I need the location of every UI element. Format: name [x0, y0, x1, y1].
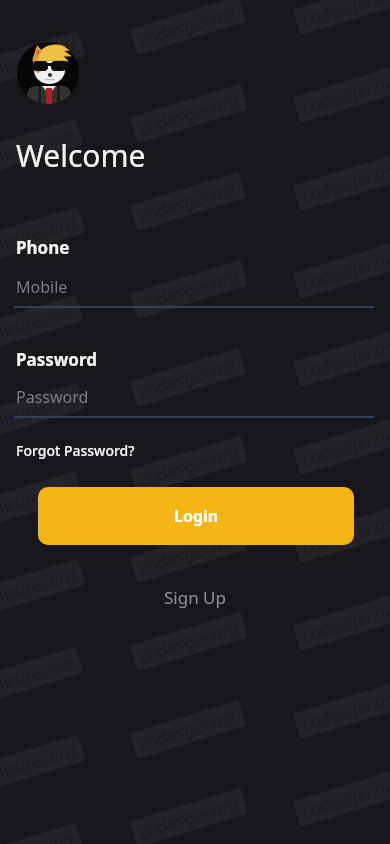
staticText: codesger.net — [299, 772, 390, 823]
staticText: Password — [16, 348, 97, 371]
staticText: codesger.net — [299, 596, 390, 647]
staticText: codesger.org — [0, 386, 79, 439]
button[interactable]: Mobile — [14, 268, 374, 308]
staticText: Phone — [16, 236, 70, 259]
staticText: codesger.org — [0, 210, 79, 263]
staticText: codesger.net — [136, 0, 240, 51]
staticText: codesger.org — [136, 87, 242, 140]
staticText: codesger.org — [136, 615, 242, 668]
button[interactable] — [17, 42, 79, 104]
staticText: codesger.net — [0, 475, 77, 526]
staticText: codesger.net — [299, 420, 390, 471]
staticText: Mobile — [16, 276, 68, 298]
staticText: codesger.org — [299, 683, 390, 736]
staticText: codesger.org — [0, 562, 79, 615]
staticText: codesger.org — [299, 155, 390, 208]
button[interactable]: Login — [38, 487, 354, 545]
button[interactable]: Sign Up — [164, 586, 226, 609]
button[interactable]: Password — [14, 378, 374, 418]
staticText: codesger.net — [0, 651, 77, 702]
staticText: codesger.org — [136, 439, 242, 492]
staticText: Login — [174, 505, 219, 527]
staticText: codesger.net — [136, 176, 240, 227]
staticText: codesger.net — [136, 528, 240, 579]
staticText: codesger.net — [136, 704, 240, 755]
staticText: codesger.net — [136, 352, 240, 403]
staticText: codesger.org — [299, 0, 390, 32]
staticText: codesger.net — [299, 244, 390, 295]
staticText: codesger.org — [0, 738, 79, 791]
staticText: codesger.net — [299, 68, 390, 119]
staticText: codesger.net — [0, 299, 77, 350]
staticText: codesger.net — [0, 827, 77, 844]
staticText: codesger.org — [136, 263, 242, 316]
staticText: Welcome — [16, 135, 146, 176]
staticText: codesger.org — [136, 791, 242, 844]
staticText: codesger.org — [299, 331, 390, 384]
staticText: codesger.net — [0, 123, 77, 174]
staticText: codesger.org — [299, 507, 390, 560]
staticText: codesger.org — [0, 34, 79, 87]
staticText: Password — [16, 386, 89, 408]
button[interactable]: Forgot Password? — [16, 441, 135, 460]
